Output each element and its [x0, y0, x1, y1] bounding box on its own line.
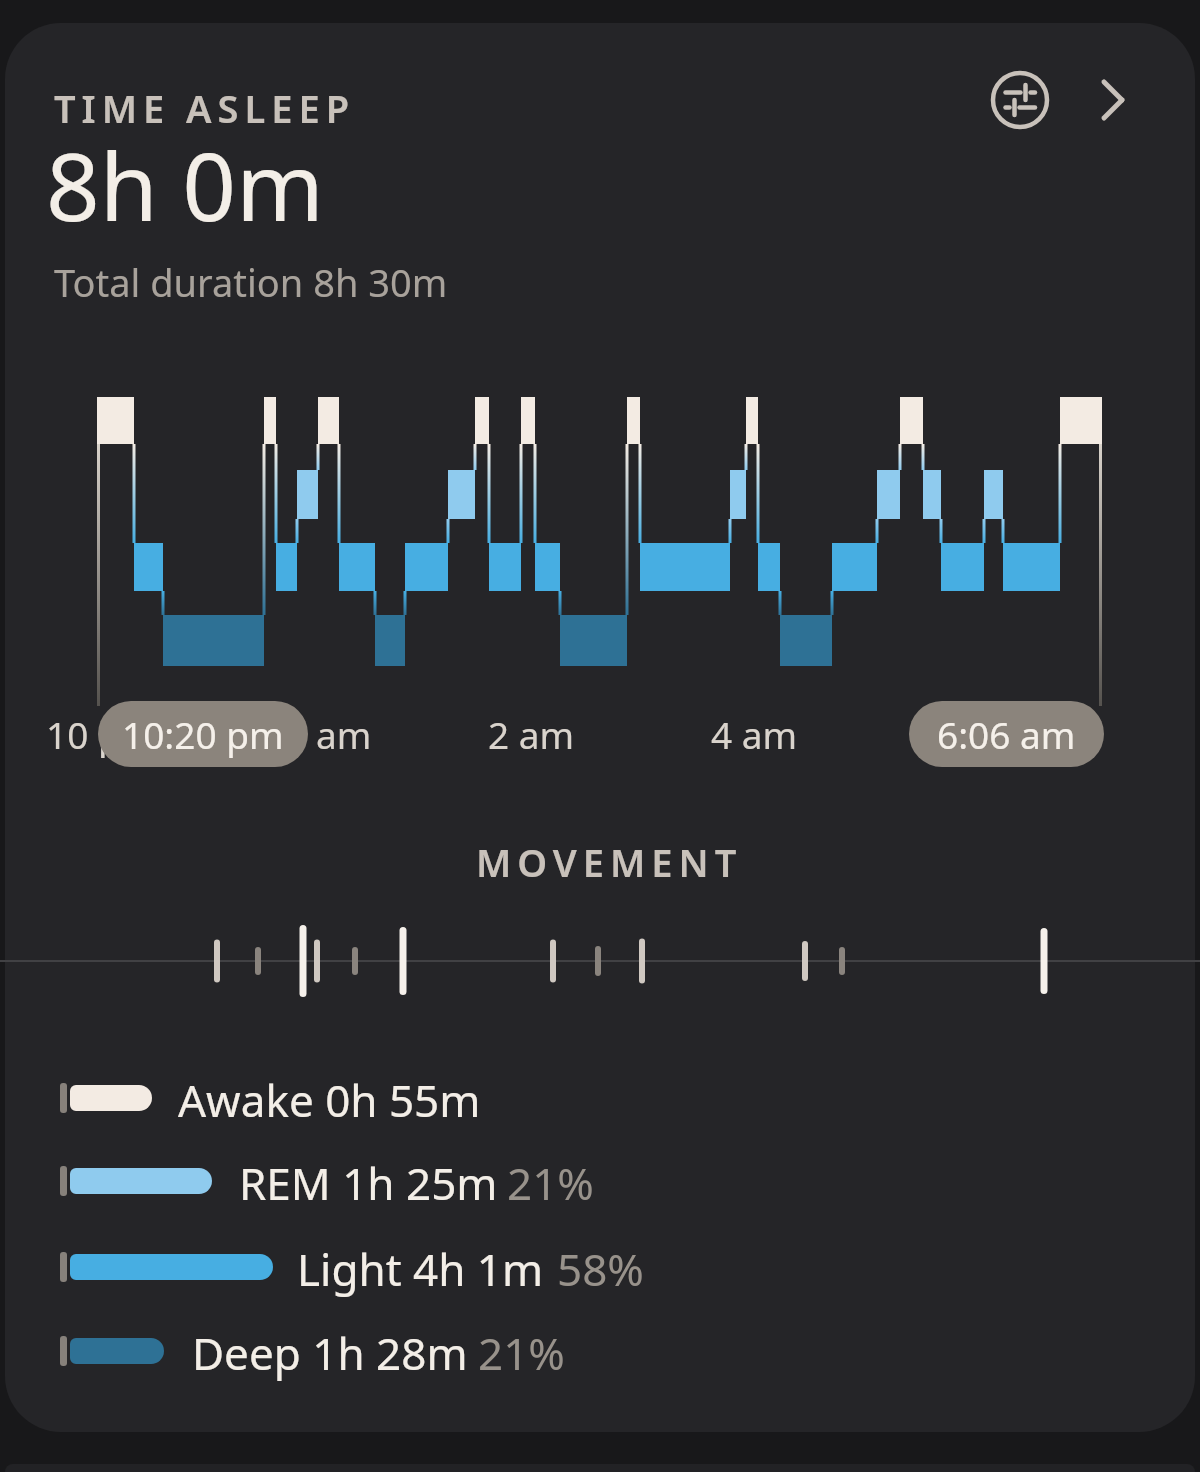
- staticText: 10:20 pm: [122, 709, 284, 759]
- staticText: am: [316, 709, 372, 759]
- button[interactable]: 10:20 pm: [98, 701, 308, 767]
- staticText: TIME ASLEEP: [54, 82, 356, 134]
- staticText: 21%: [507, 1153, 594, 1213]
- staticText: 6:06 am: [937, 709, 1076, 759]
- staticText: REM 1h 25m: [239, 1153, 498, 1213]
- staticText: Total duration 8h 30m: [54, 256, 448, 308]
- staticText: Awake 0h 55m: [178, 1070, 481, 1130]
- staticText: Light 4h 1m: [297, 1239, 544, 1299]
- staticText: 21%: [478, 1323, 565, 1383]
- button[interactable]: [986, 66, 1054, 134]
- button[interactable]: [1083, 70, 1143, 130]
- button[interactable]: 6:06 am: [909, 701, 1104, 767]
- staticText: MOVEMENT: [476, 836, 743, 888]
- staticText: 58%: [557, 1239, 644, 1299]
- staticText: 4 am: [711, 709, 798, 759]
- staticText: 8h 0m: [46, 121, 324, 249]
- staticText: Deep 1h 28m: [192, 1323, 468, 1383]
- staticText: 2 am: [488, 709, 575, 759]
- staticText: 10 pm: [46, 709, 156, 759]
